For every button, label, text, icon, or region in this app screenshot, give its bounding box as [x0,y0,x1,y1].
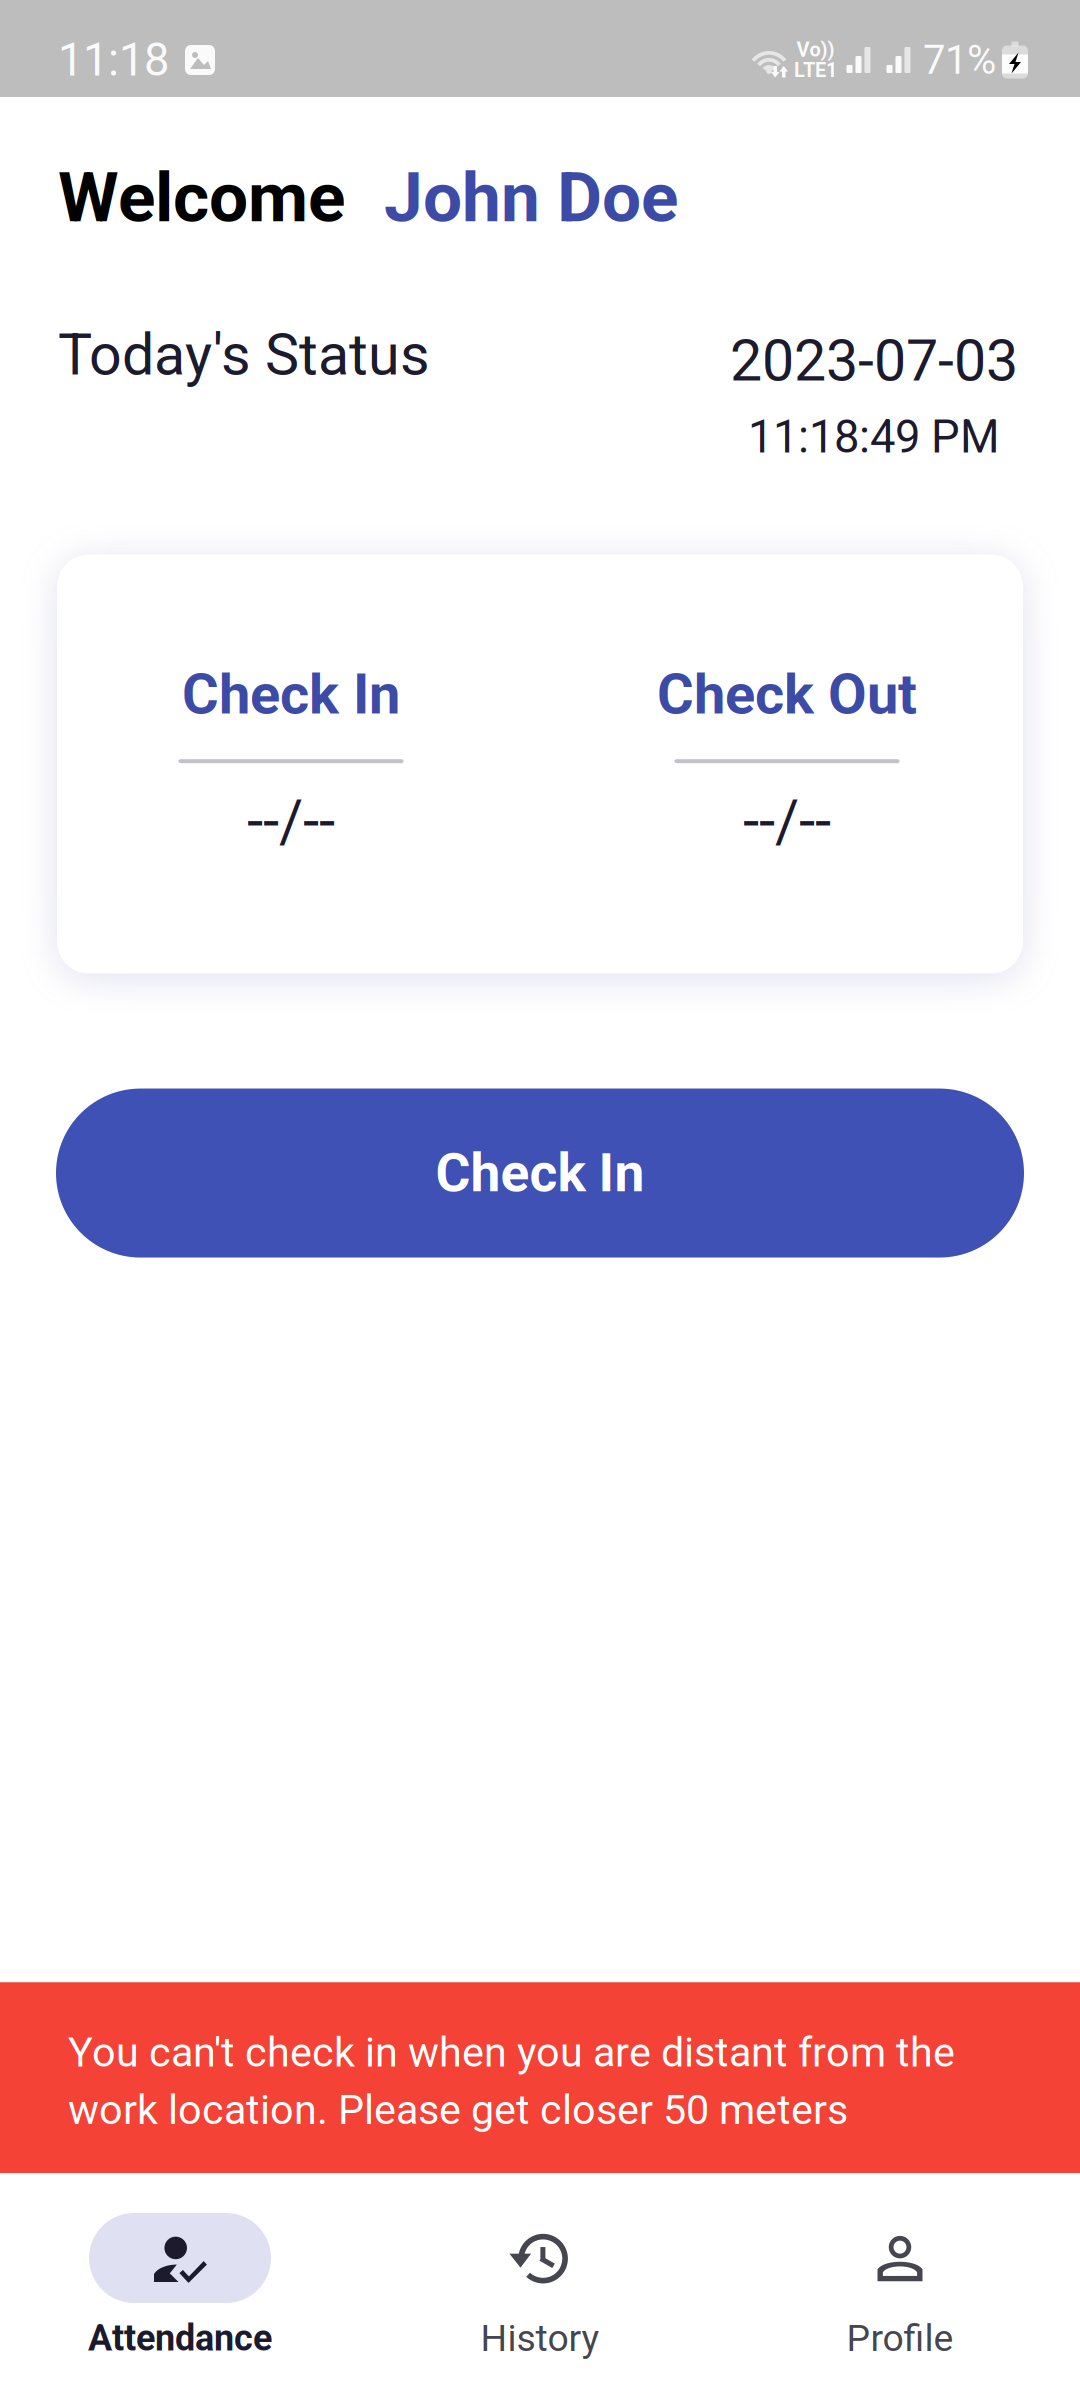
staticText: Profile [846,2316,953,2360]
staticText: Check Out [657,662,917,727]
staticText: LTE1 [794,58,837,82]
button[interactable]: Attendance [0,2213,360,2359]
staticText: 11:18:49 PM [748,410,1000,463]
button[interactable]: Check In [56,1089,1024,1258]
staticText: 71% [923,37,996,83]
staticText: Check In [435,1142,644,1204]
staticText: Vo)) [796,38,834,61]
staticText: Attendance [88,2317,272,2359]
staticText: --/-- [743,787,831,856]
staticText: Welcome [58,157,345,238]
staticText: You can't check in when you are distant … [68,2028,955,2077]
button[interactable]: History [360,2212,720,2360]
staticText: --/-- [247,787,335,856]
staticText: 2023-07-03 [730,327,1018,394]
staticText: 11:18 [58,33,169,86]
staticText: Check In [182,662,400,727]
staticText: Today's Status [58,321,430,388]
button[interactable]: Profile [720,2212,1080,2360]
staticText: work location. Please get closer 50 mete… [68,2086,848,2134]
staticText: John Doe [384,157,678,238]
staticText: History [480,2316,599,2360]
